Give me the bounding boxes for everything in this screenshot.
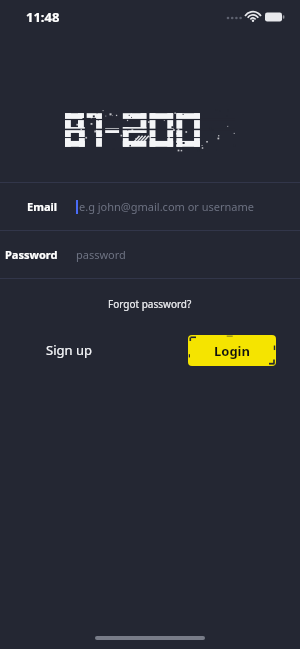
staticText: Password: [5, 247, 58, 262]
button[interactable]: Login: [188, 335, 276, 366]
staticText: Forgot password?: [108, 297, 192, 311]
button[interactable]: Forgot password?: [0, 293, 300, 315]
staticText: password: [76, 247, 126, 262]
staticText: e.g john@gmail.com or username: [79, 199, 255, 214]
button[interactable]: Password: [0, 231, 300, 278]
staticText: Login: [214, 342, 250, 360]
button[interactable]: Email: [0, 183, 300, 230]
staticText: 11:48: [26, 8, 60, 26]
staticText: Sign up: [46, 341, 92, 359]
staticText: Email: [27, 199, 58, 214]
button[interactable]: Sign up: [46, 341, 92, 359]
